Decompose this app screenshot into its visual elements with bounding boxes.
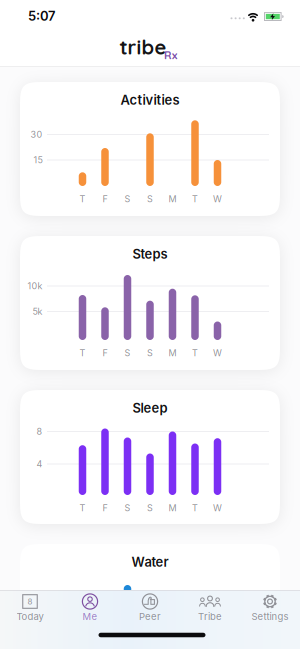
staticText: S: [124, 348, 130, 358]
staticText: W: [213, 503, 222, 513]
staticText: M: [168, 348, 176, 358]
button[interactable]: 8: [1, 591, 59, 627]
staticText: tribe: [119, 34, 166, 59]
staticText: W: [213, 194, 222, 204]
button[interactable]: Settings: [241, 591, 299, 627]
staticText: W: [213, 348, 222, 358]
staticText: Rx: [164, 48, 177, 62]
staticText: F: [102, 503, 107, 513]
staticText: Today: [16, 611, 43, 622]
staticText: 30: [30, 129, 42, 140]
staticText: T: [79, 348, 85, 358]
staticText: M: [168, 503, 176, 513]
staticText: Peer: [139, 611, 161, 622]
staticText: Sleep: [132, 400, 167, 416]
staticText: T: [79, 194, 85, 204]
staticText: T: [79, 503, 85, 513]
staticText: M: [168, 194, 176, 204]
staticText: 5k: [32, 306, 42, 317]
staticText: 8: [27, 597, 32, 606]
staticText: 10k: [27, 281, 42, 291]
button[interactable]: Peer: [121, 591, 179, 627]
staticText: Activities: [120, 92, 179, 108]
staticText: T: [192, 348, 198, 358]
staticText: Me: [82, 611, 97, 622]
staticText: 15: [33, 155, 42, 165]
staticText: 8: [36, 426, 42, 437]
staticText: Tribe: [198, 611, 222, 622]
staticText: S: [147, 348, 153, 358]
button[interactable]: Me: [61, 591, 119, 627]
staticText: Settings: [251, 611, 288, 622]
staticText: T: [192, 503, 198, 513]
staticText: S: [147, 194, 153, 204]
staticText: Steps: [132, 246, 167, 262]
staticText: S: [124, 503, 130, 513]
staticText: Water: [131, 554, 168, 570]
staticText: S: [147, 503, 153, 513]
staticText: F: [102, 348, 107, 358]
staticText: T: [192, 194, 198, 204]
staticText: 4: [36, 459, 42, 469]
button[interactable]: Tribe: [181, 591, 239, 627]
staticText: S: [124, 194, 130, 204]
staticText: F: [102, 194, 107, 204]
staticText: 5:07: [28, 8, 55, 24]
